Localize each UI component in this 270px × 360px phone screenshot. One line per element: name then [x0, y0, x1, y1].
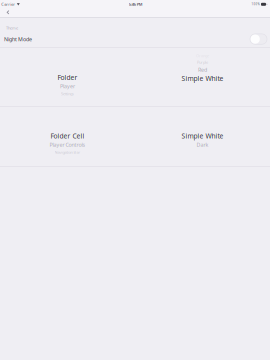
staticText: Folder Cell: [50, 131, 84, 140]
staticText: 5:46 PM: [129, 2, 143, 7]
staticText: 100%: [252, 2, 260, 6]
staticText: Red: [198, 66, 207, 73]
staticText: Purple: [197, 59, 208, 65]
staticText: Dark: [196, 141, 208, 148]
staticText: Player Controls: [49, 141, 85, 148]
button[interactable]: Night Mode: [0, 31, 270, 48]
button[interactable]: Back: [0, 8, 16, 17]
staticText: Night Mode: [4, 36, 32, 43]
staticText: Simple White: [181, 74, 223, 83]
staticText: Theme: [6, 25, 18, 31]
staticText: Folder: [57, 73, 77, 82]
staticText: Player: [60, 83, 75, 90]
staticText: Navigation Bar: [54, 149, 80, 155]
staticText: Simple White: [181, 131, 223, 140]
staticText: Settings: [61, 91, 74, 96]
staticText: Carrier: [1, 2, 15, 7]
